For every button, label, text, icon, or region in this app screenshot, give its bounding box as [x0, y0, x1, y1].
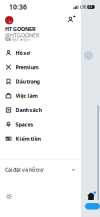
- staticText: Spaces: [15, 121, 33, 128]
- staticText: Hồ sơ: [15, 49, 30, 56]
- button[interactable]: Việc làm: [0, 89, 81, 103]
- button[interactable]: Thêm tài khoản: [67, 16, 76, 25]
- staticText: 62: [89, 5, 93, 9]
- staticText: Việc làm: [15, 92, 37, 99]
- button[interactable]: Cài đặt và hỗ trợ: [0, 160, 81, 180]
- button[interactable]: Kiếm tiền: [0, 131, 81, 146]
- button[interactable]: Giao diện: [2, 189, 16, 203]
- button[interactable]: Danh sách: [0, 103, 81, 117]
- staticText: @HTGOONER: [5, 32, 39, 39]
- staticText: Cài đặt và hỗ trợ: [5, 166, 43, 173]
- staticText: 10:36: [9, 3, 27, 11]
- staticText: Người theo dõi: [23, 34, 32, 45]
- button[interactable]: Premium: [0, 60, 81, 74]
- button[interactable]: Hồ sơ: [0, 46, 81, 60]
- staticText: Dấu trang: [15, 78, 39, 85]
- staticText: Kiếm tiền: [15, 135, 40, 142]
- staticText: 9: [20, 38, 22, 41]
- staticText: LTE: [80, 4, 86, 10]
- staticText: 124: [5, 38, 11, 41]
- staticText: Đang theo dõi: [12, 34, 19, 45]
- button[interactable]: Dấu trang: [0, 74, 81, 89]
- staticText: Danh sách: [15, 106, 41, 114]
- staticText: HT GOONER: [5, 25, 35, 33]
- button[interactable]: Spaces: [0, 117, 81, 131]
- staticText: Premium: [15, 64, 38, 71]
